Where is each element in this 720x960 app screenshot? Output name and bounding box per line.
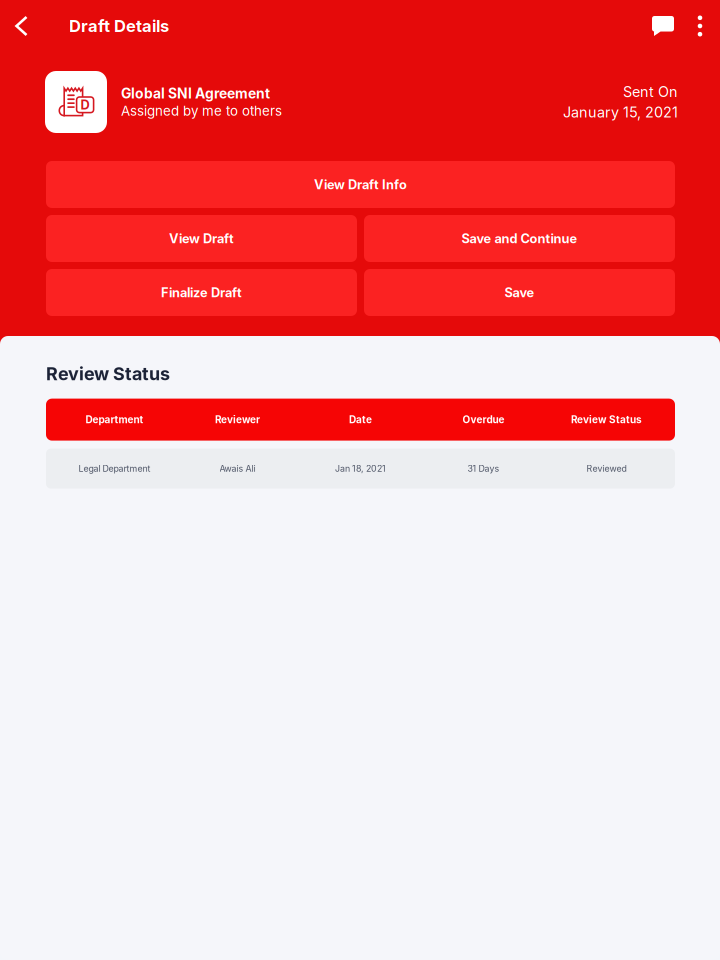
button[interactable]: View Draft Info [46, 161, 675, 208]
staticText: Global SNI Agreement [121, 85, 270, 102]
staticText: Review Status [571, 414, 642, 426]
staticText: Assigned by me to others [121, 103, 282, 119]
staticText: Reviewer [215, 414, 260, 426]
staticText: Save and Continue [461, 231, 577, 246]
staticText: Draft Details [69, 16, 169, 36]
staticText: D [81, 97, 90, 113]
staticText: View Draft [169, 231, 234, 246]
button[interactable]: View Draft [46, 215, 357, 262]
button[interactable]: Legal Department [46, 449, 675, 489]
button[interactable]: Messages [640, 5, 686, 47]
staticText: Date [349, 414, 372, 426]
button[interactable]: Back [1, 5, 43, 47]
staticText: Awais Ali [219, 463, 255, 474]
staticText: Department [85, 414, 143, 426]
button[interactable]: Save [364, 269, 675, 316]
staticText: View Draft Info [314, 177, 407, 192]
button[interactable]: Finalize Draft [46, 269, 357, 316]
staticText: Finalize Draft [161, 285, 242, 300]
button[interactable]: Save and Continue [364, 215, 675, 262]
staticText: Save [504, 285, 534, 300]
staticText: January 15, 2021 [563, 103, 678, 121]
staticText: Jan 18, 2021 [335, 463, 386, 474]
staticText: Review Status [46, 363, 170, 385]
staticText: Legal Department [78, 463, 150, 474]
staticText: 31 Days [467, 463, 499, 474]
staticText: Sent On [623, 83, 678, 100]
staticText: Reviewed [586, 463, 626, 474]
staticText: Overdue [462, 414, 504, 426]
button[interactable]: More options [686, 5, 714, 47]
